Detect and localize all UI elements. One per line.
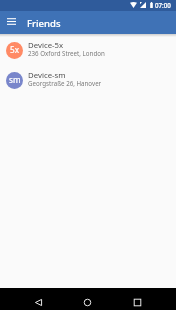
staticText: Friends [27,17,61,30]
button[interactable]: Open navigation drawer [0,11,23,34]
staticText: sm [9,74,21,85]
staticText: Georgstraße 26, Hanover [28,79,102,87]
staticText: Device-5x [28,40,64,51]
staticText: 236 Oxford Street, London [28,49,105,57]
staticText: 5x [10,44,20,55]
button[interactable]: Recent apps [126,288,148,310]
staticText: Device-sm [28,70,66,81]
button[interactable]: Back [27,288,49,310]
button[interactable]: 5x [0,35,176,65]
staticText: 07:00 [155,1,171,9]
button[interactable]: sm [0,65,176,95]
button[interactable]: Home [76,288,98,310]
